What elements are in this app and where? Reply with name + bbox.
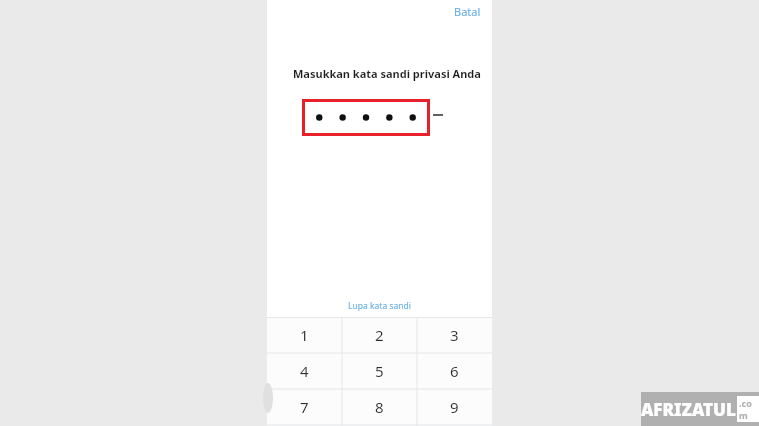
button[interactable]: 3 (417, 317, 492, 353)
button[interactable]: 7 (267, 389, 342, 425)
button[interactable]: 1 (267, 317, 342, 353)
staticText: 2 (375, 325, 384, 345)
button[interactable]: 8 (342, 389, 417, 425)
staticText: 9 (450, 397, 459, 417)
staticText: 4 (300, 361, 309, 381)
button[interactable]: Password field (302, 99, 430, 136)
staticText: 7 (300, 397, 309, 417)
button[interactable]: 9 (417, 389, 492, 425)
button[interactable]: 2 (342, 317, 417, 353)
button[interactable]: Lupa kata sandi (340, 298, 419, 314)
staticText: Lupa kata sandi (348, 300, 411, 312)
staticText: 1 (300, 325, 309, 345)
staticText: .com (739, 397, 757, 421)
staticText: 3 (450, 325, 459, 345)
staticText: Batal (454, 4, 481, 19)
staticText: 8 (375, 397, 384, 417)
staticText: AFRIZATUL (641, 398, 736, 421)
staticText: Masukkan kata sandi privasi Anda (293, 66, 481, 81)
button[interactable]: Batal (449, 1, 486, 22)
staticText: 6 (450, 361, 459, 381)
staticText: 5 (375, 361, 384, 381)
button[interactable]: 6 (417, 353, 492, 389)
button[interactable]: 5 (342, 353, 417, 389)
button[interactable]: 4 (267, 353, 342, 389)
